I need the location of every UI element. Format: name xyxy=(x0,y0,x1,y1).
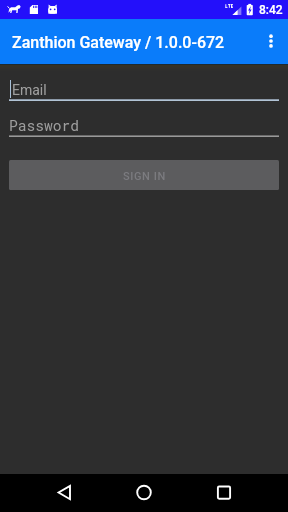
button[interactable]: Password xyxy=(9,117,279,137)
button[interactable]: Email xyxy=(9,79,279,101)
button[interactable]: Back xyxy=(30,474,86,512)
staticText: Email xyxy=(12,82,47,98)
button[interactable]: Home xyxy=(116,474,172,512)
staticText: Password xyxy=(9,116,80,135)
staticText: 8:42 xyxy=(259,3,283,17)
button[interactable]: Recents xyxy=(202,474,258,512)
button[interactable]: More options xyxy=(253,19,288,64)
staticText: Zanthion Gateway / 1.0.0-672 xyxy=(12,33,225,52)
button[interactable]: SIGN IN xyxy=(9,160,279,190)
staticText: SIGN IN xyxy=(123,170,166,183)
